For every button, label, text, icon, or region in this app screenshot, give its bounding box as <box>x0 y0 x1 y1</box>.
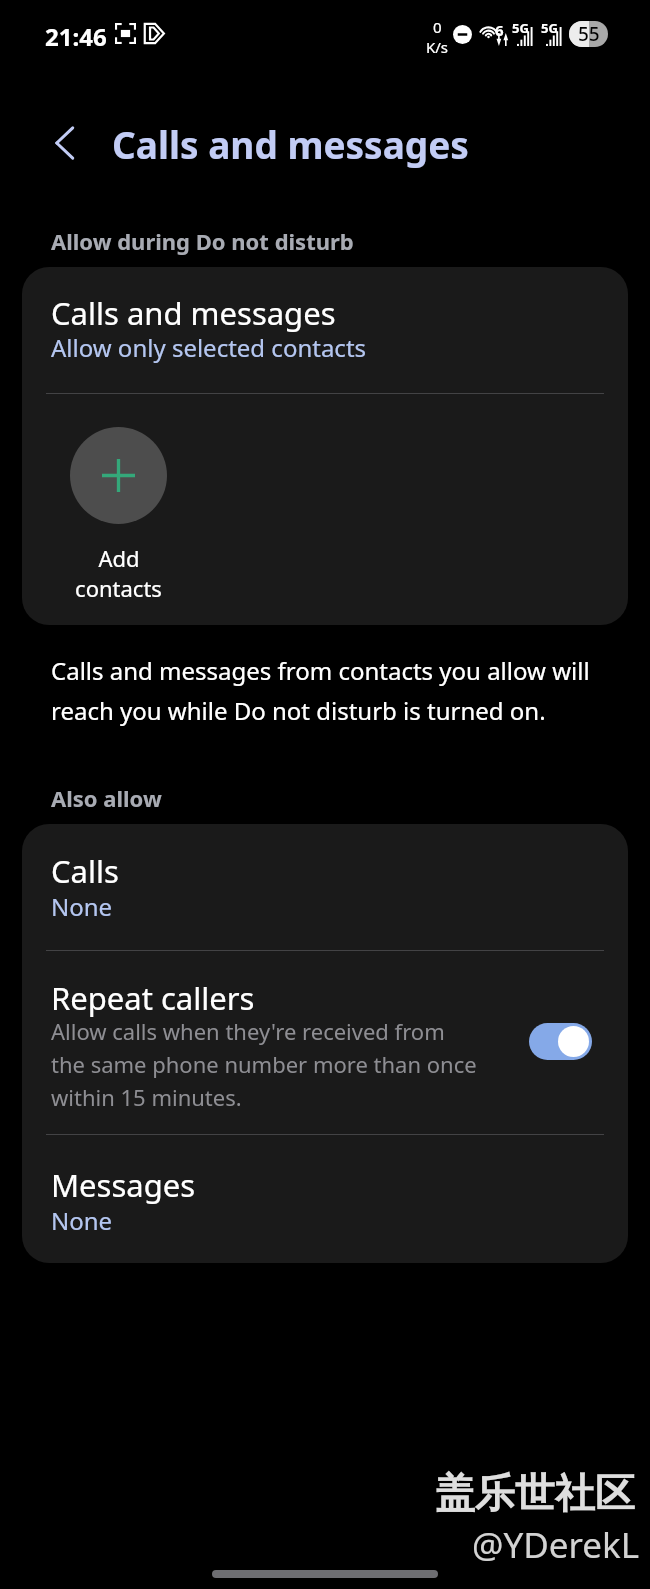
staticText: Also allow <box>51 783 162 813</box>
button[interactable]: Repeat callers toggle <box>529 1023 592 1060</box>
staticText: Calls and messages <box>112 119 469 169</box>
button[interactable]: Repeat callers <box>22 950 628 1134</box>
staticText: Calls <box>51 850 119 892</box>
button[interactable]: Calls <box>22 824 628 950</box>
staticText: @YDerekL <box>472 1521 640 1569</box>
staticText: contacts <box>75 573 162 603</box>
staticText: 盖乐世社区 <box>435 1468 635 1518</box>
staticText: 0 <box>433 17 442 37</box>
staticText: Repeat callers <box>51 977 255 1019</box>
staticText: None <box>51 890 113 923</box>
staticText: K/s <box>426 37 449 57</box>
staticText: Messages <box>51 1164 196 1206</box>
staticText: None <box>51 1204 113 1237</box>
staticText: 55 <box>578 21 600 47</box>
staticText: Calls and messages <box>51 292 336 334</box>
button[interactable]: Add contacts <box>70 427 167 603</box>
button[interactable]: Calls and messages <box>22 267 628 393</box>
staticText: Allow only selected contacts <box>51 331 367 364</box>
staticText: 5G <box>512 19 529 37</box>
button[interactable]: Back <box>36 113 96 173</box>
staticText: Allow calls when they're received from t… <box>51 1016 481 1112</box>
button[interactable]: Messages <box>22 1134 628 1263</box>
staticText: 5G <box>541 19 558 37</box>
staticText: Allow during Do not disturb <box>51 226 354 256</box>
staticText: 6 <box>495 20 504 40</box>
staticText: 21:46 <box>45 20 107 53</box>
staticText: Calls and messages from contacts you all… <box>51 654 621 727</box>
staticText: Add <box>98 543 140 573</box>
